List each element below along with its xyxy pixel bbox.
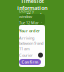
- staticText: Your order: [19, 28, 40, 33]
- staticText: Confirm: [21, 59, 38, 65]
- staticText: Arriving between 9 and 11 am: [19, 35, 43, 51]
- staticText: Timeslot information offered: [17, 0, 47, 19]
- button[interactable]: Confirm: [19, 59, 41, 65]
- staticText: Tue 12 Mar · 09:00 – 11:00: [19, 20, 43, 31]
- staticText: Delivery window: [19, 8, 34, 19]
- staticText: Courier: [19, 52, 33, 58]
